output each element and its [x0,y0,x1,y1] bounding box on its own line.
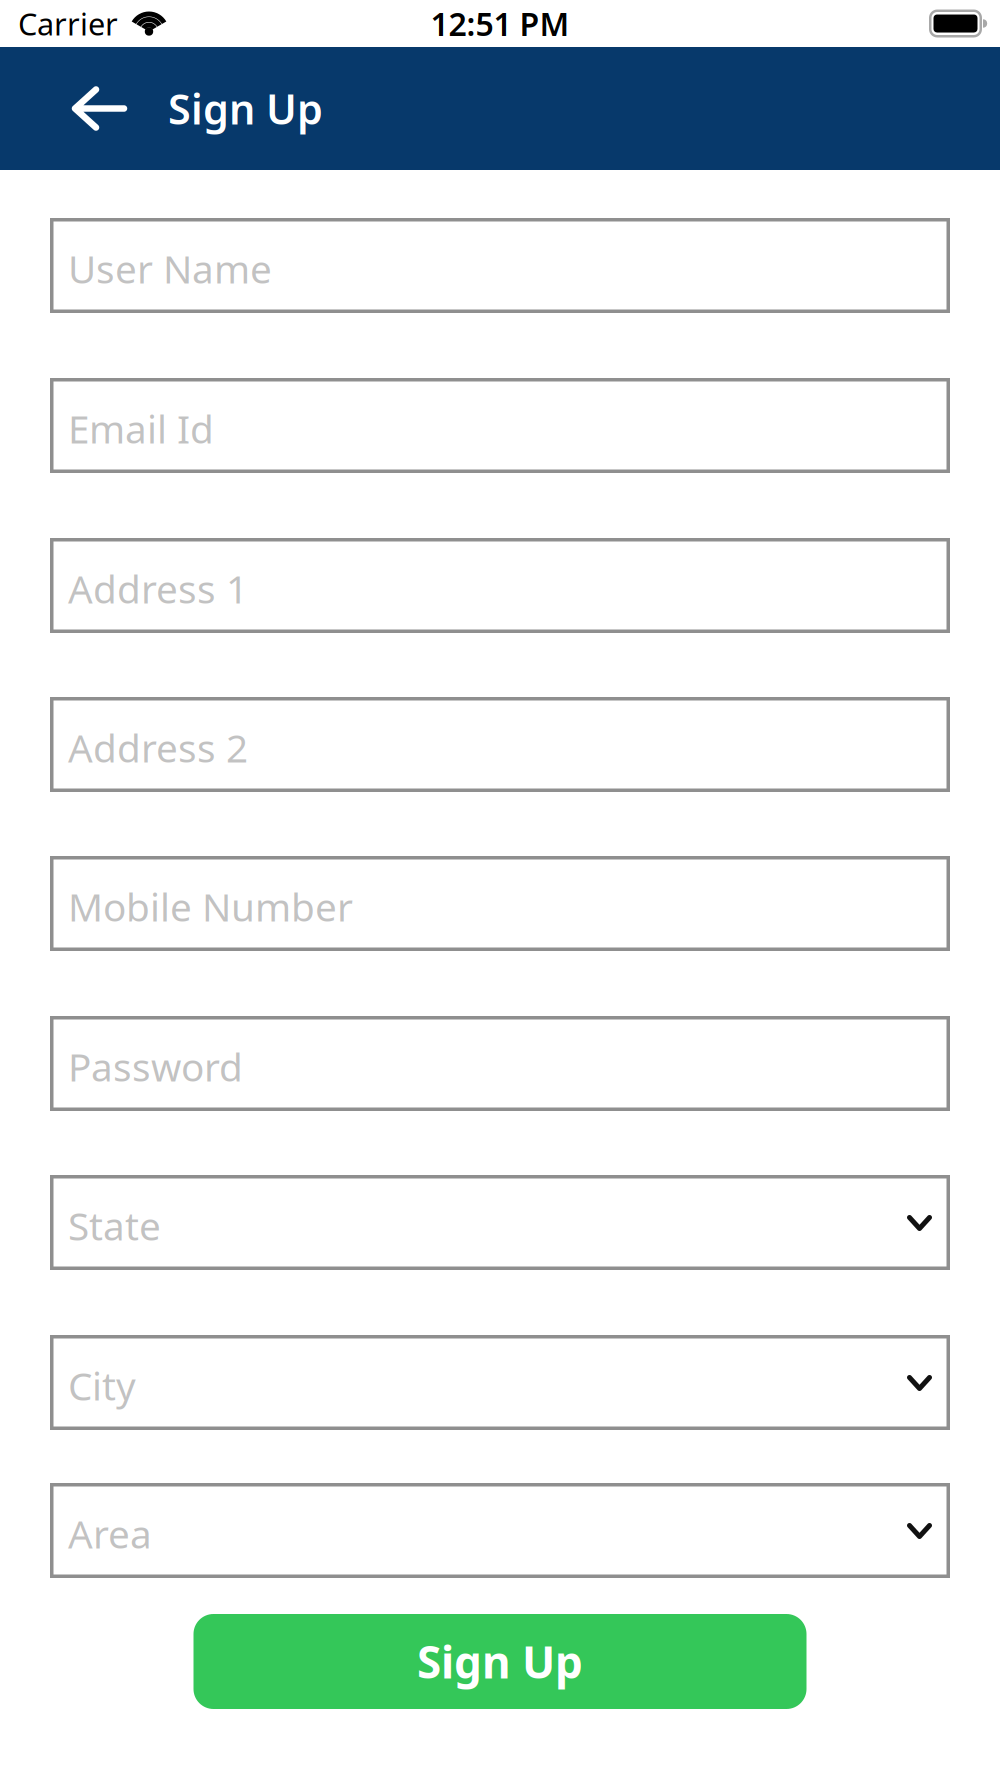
staticText: Carrier [18,3,118,44]
staticText: Mobile Number [68,881,353,932]
staticText: Area [68,1508,152,1559]
staticText: Sign Up [417,1632,583,1691]
staticText: 12:51 PM [430,2,569,45]
staticText: Email Id [68,403,214,454]
staticText: Address 2 [68,722,248,773]
staticText: State [68,1200,161,1251]
staticText: Password [68,1041,243,1092]
staticText: City [68,1360,136,1411]
staticText: Sign Up [168,81,323,136]
staticText: User Name [68,243,272,294]
staticText: Address 1 [68,563,248,614]
